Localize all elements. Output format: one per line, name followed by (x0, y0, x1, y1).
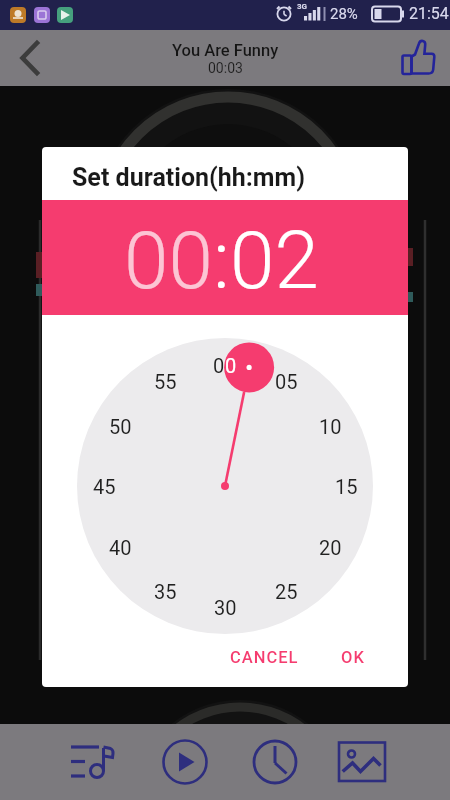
staticText: 15 (335, 475, 358, 498)
button[interactable] (0, 30, 56, 86)
staticText: 0 (225, 354, 237, 377)
staticText: 00 (124, 214, 213, 308)
staticText: 02 (230, 214, 319, 308)
staticText: 35 (154, 580, 177, 603)
staticText: 3G (297, 2, 308, 11)
staticText: : (213, 214, 230, 308)
staticText: 28% (330, 5, 358, 23)
button[interactable] (66, 736, 118, 788)
staticText: 20 (319, 536, 342, 559)
staticText: 05 (275, 370, 298, 393)
button[interactable]: CANCEL (218, 638, 311, 677)
staticText: You Are Funny (172, 41, 279, 60)
staticText: 0 (213, 354, 225, 377)
staticText: Set duration(hh:mm) (72, 163, 305, 192)
staticText: 50 (109, 415, 132, 438)
staticText: 55 (154, 370, 177, 393)
button[interactable] (159, 736, 211, 788)
staticText: CANCEL (230, 648, 299, 667)
staticText: 25 (275, 580, 298, 603)
button[interactable] (336, 736, 388, 788)
button[interactable]: OK (329, 638, 377, 677)
button[interactable] (249, 736, 301, 788)
staticText: 40 (109, 536, 132, 559)
button[interactable] (394, 30, 450, 86)
staticText: 10 (319, 415, 342, 438)
staticText: 45 (93, 475, 116, 498)
staticText: 00:03 (208, 60, 243, 76)
staticText: 21:54 (409, 4, 449, 23)
staticText: 30 (214, 596, 237, 619)
staticText: OK (341, 648, 365, 667)
